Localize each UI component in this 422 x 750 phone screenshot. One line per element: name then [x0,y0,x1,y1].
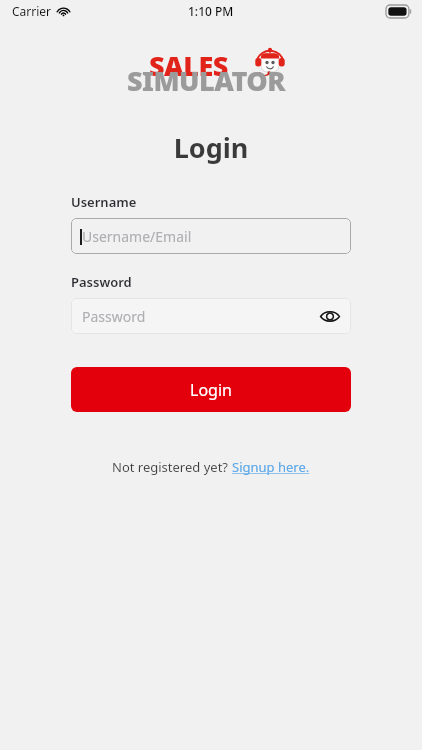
staticText: Username/Email [82,227,192,246]
staticText: SALES [149,47,228,84]
staticText: Password [71,273,132,291]
staticText: 1:10 PM [188,3,234,19]
staticText: Signup here. [232,458,310,476]
staticText: Login [190,379,232,401]
staticText: Login [0,129,422,166]
button[interactable]: Show password [316,302,344,330]
staticText: Password [82,307,146,326]
staticText: Username [71,193,137,211]
button[interactable]: Username/Email [71,218,351,254]
staticText: SIMULATOR [127,62,286,99]
button[interactable]: Login [71,367,351,412]
staticText: Not registered yet? [112,458,232,476]
button[interactable]: Signup here. [232,458,310,476]
button[interactable]: Password [71,298,351,334]
staticText: Carrier [12,3,52,19]
